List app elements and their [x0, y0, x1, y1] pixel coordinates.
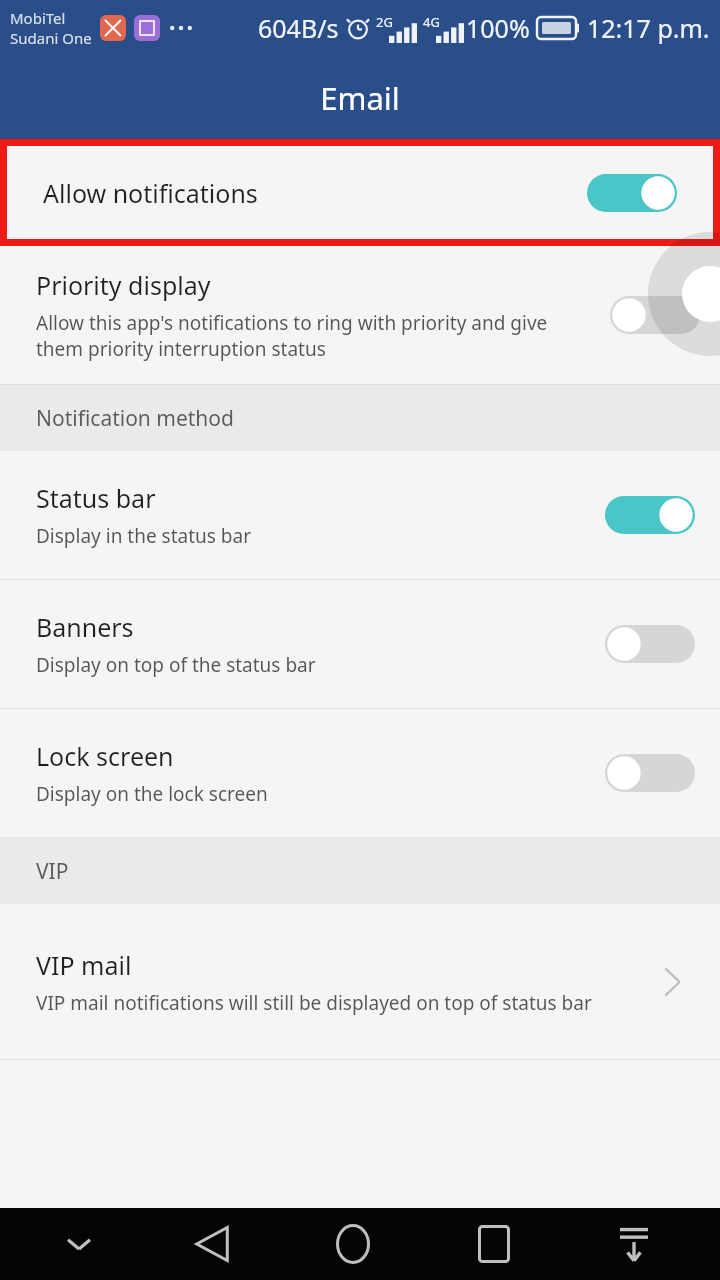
button[interactable]: Priority display: [0, 246, 720, 384]
button[interactable]: Lock screen: [0, 709, 720, 837]
staticText: Allow this app's notifications to ring w…: [36, 310, 586, 362]
staticText: Display on the lock screen: [36, 781, 268, 807]
button[interactable]: Toggle on: [605, 495, 695, 535]
button[interactable]: Open notification shade: [579, 1208, 689, 1280]
staticText: Notification method: [36, 404, 234, 433]
staticText: Email: [320, 77, 400, 119]
button[interactable]: VIP mail: [0, 904, 720, 1059]
staticText: Lock screen: [36, 739, 174, 773]
staticText: 4G: [423, 13, 440, 31]
button[interactable]: Allow notifications: [7, 146, 713, 239]
staticText: Priority display: [36, 268, 211, 302]
staticText: Display on top of the status bar: [36, 652, 316, 678]
staticText: VIP: [36, 857, 69, 886]
staticText: 604B/s: [258, 11, 339, 45]
staticText: Sudani One: [10, 28, 92, 48]
staticText: Status bar: [36, 481, 156, 515]
button[interactable]: Status bar: [0, 451, 720, 579]
staticText: Allow notifications: [43, 176, 587, 210]
button[interactable]: Recent apps: [439, 1208, 549, 1280]
button[interactable]: Hide navigation bar: [31, 1208, 127, 1280]
staticText: Banners: [36, 610, 134, 644]
staticText: VIP mail notifications will still be dis…: [36, 990, 592, 1016]
button[interactable]: Back: [157, 1208, 267, 1280]
button[interactable]: Home: [298, 1208, 408, 1280]
button[interactable]: Toggle off: [610, 295, 700, 335]
button[interactable]: Toggle on: [587, 173, 677, 213]
button[interactable]: Banners: [0, 580, 720, 708]
button[interactable]: Toggle off: [605, 753, 695, 793]
staticText: VIP mail: [36, 948, 132, 982]
staticText: MobiTel: [10, 8, 66, 28]
staticText: 100%: [466, 11, 530, 45]
staticText: 12:17 p.m.: [587, 11, 710, 45]
button[interactable]: Toggle off: [605, 624, 695, 664]
staticText: 2G: [376, 13, 393, 31]
staticText: Display in the status bar: [36, 523, 252, 549]
